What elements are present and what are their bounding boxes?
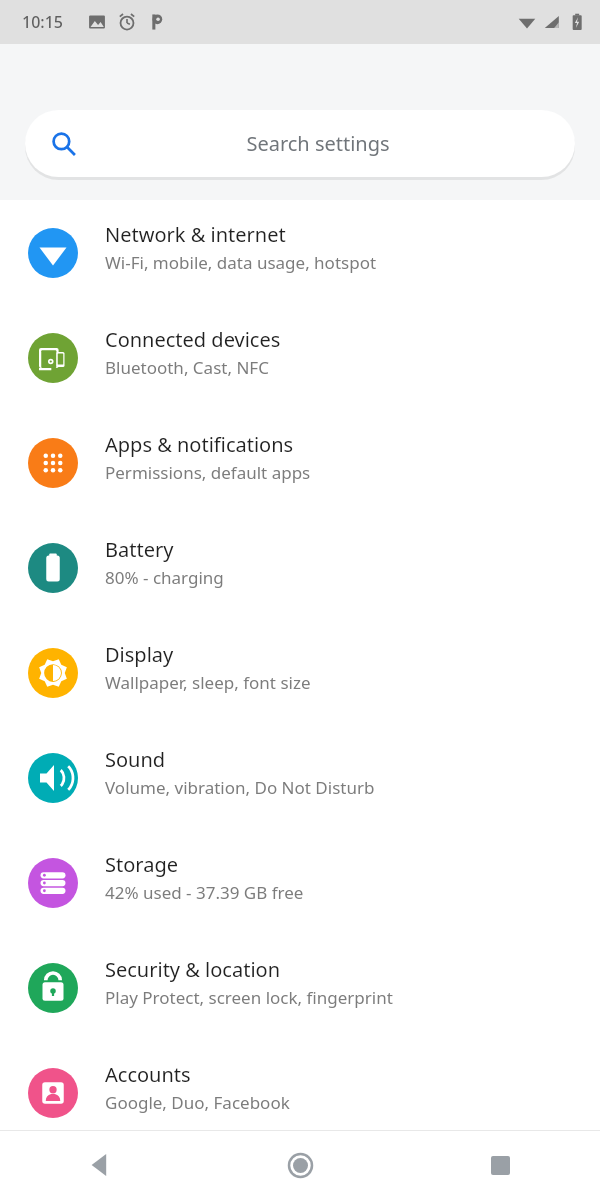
staticText: Security & location: [105, 956, 281, 983]
button[interactable]: Battery: [0, 543, 600, 648]
button[interactable]: Storage: [0, 858, 600, 963]
staticText: Apps & notifications: [105, 431, 294, 458]
staticText: Storage: [105, 851, 178, 878]
staticText: Volume, vibration, Do Not Disturb: [105, 776, 375, 799]
staticText: 42% used - 37.39 GB free: [105, 881, 304, 904]
staticText: Sound: [105, 746, 166, 773]
staticText: Display: [105, 641, 174, 668]
staticText: Network & internet: [105, 221, 286, 248]
staticText: Search settings: [246, 130, 390, 157]
button[interactable]: Sound: [0, 753, 600, 858]
staticText: Play Protect, screen lock, fingerprint: [105, 986, 393, 1009]
staticText: Connected devices: [105, 326, 281, 353]
button[interactable]: Recent apps: [472, 1137, 528, 1193]
button[interactable]: Connected devices: [0, 333, 600, 438]
button[interactable]: Network & internet: [0, 228, 600, 333]
button[interactable]: Accounts: [0, 1068, 600, 1130]
button[interactable]: Security & location: [0, 963, 600, 1068]
button[interactable]: Apps & notifications: [0, 438, 600, 543]
button[interactable]: Search: [25, 110, 575, 177]
button[interactable]: Back: [72, 1137, 128, 1193]
staticText: Battery: [105, 536, 174, 563]
other: Search: [51, 131, 77, 157]
staticText: Permissions, default apps: [105, 461, 311, 484]
button[interactable]: Display: [0, 648, 600, 753]
button[interactable]: Home: [272, 1137, 328, 1193]
staticText: Wi-Fi, mobile, data usage, hotspot: [105, 251, 377, 274]
staticText: Google, Duo, Facebook: [105, 1091, 290, 1114]
staticText: Accounts: [105, 1061, 191, 1088]
staticText: Wallpaper, sleep, font size: [105, 671, 311, 694]
staticText: 10:15: [22, 11, 63, 33]
staticText: Bluetooth, Cast, NFC: [105, 356, 269, 379]
staticText: 80% - charging: [105, 566, 224, 589]
